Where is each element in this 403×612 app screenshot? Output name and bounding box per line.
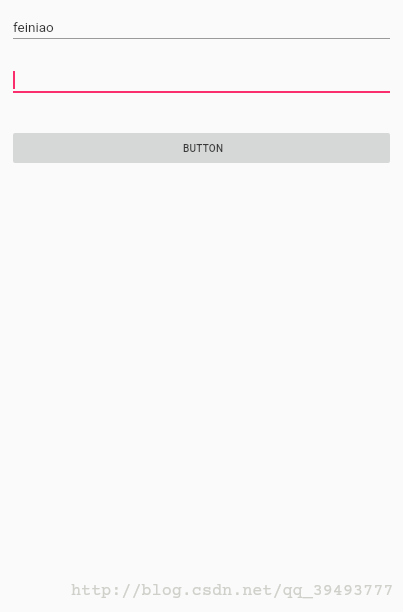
button[interactable]: Password input field, focused [13, 68, 390, 93]
staticText: http://blog.csdn.net/qq_39493777 [71, 582, 394, 601]
staticText: feiniao [13, 19, 54, 35]
button[interactable]: feiniao [13, 13, 390, 39]
button[interactable]: BUTTON [13, 133, 390, 163]
staticText: BUTTON [183, 143, 224, 155]
